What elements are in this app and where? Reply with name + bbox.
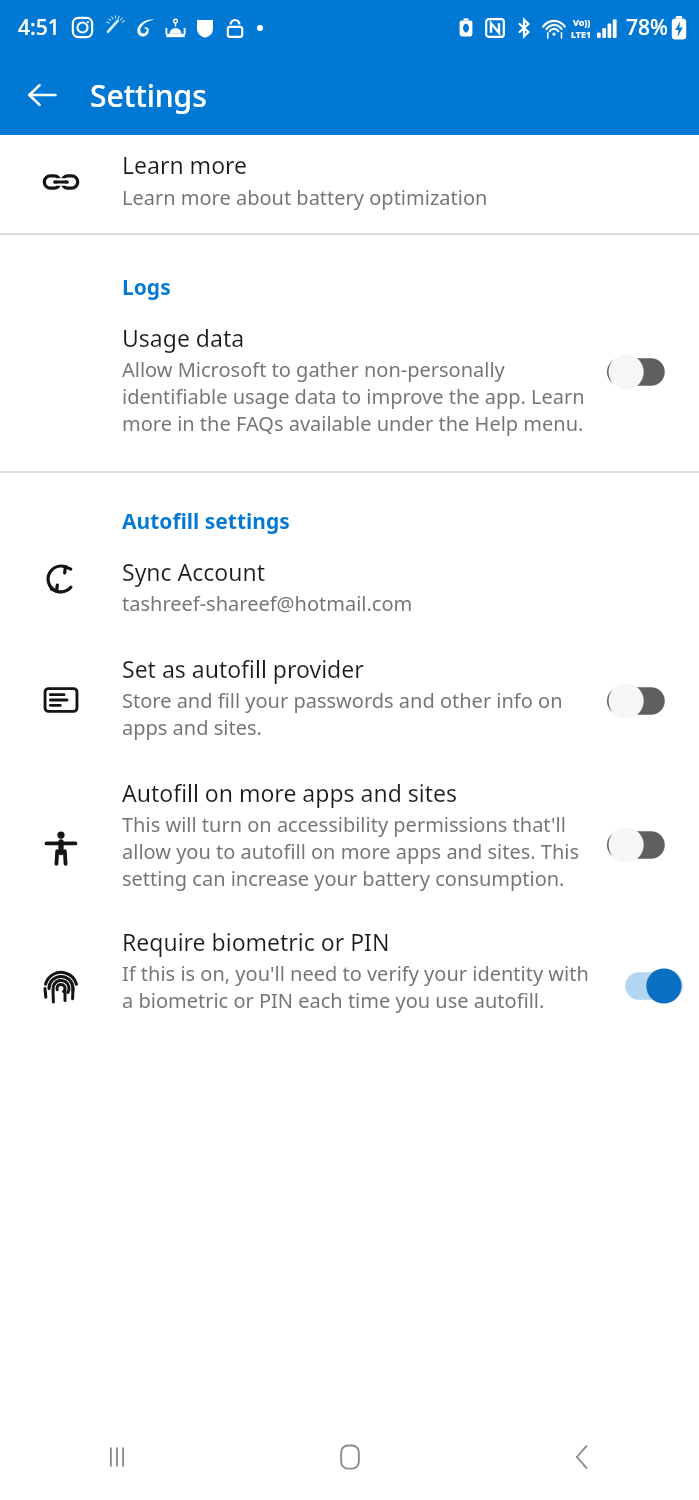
button[interactable]: Require biometric or PIN bbox=[0, 926, 699, 1044]
button[interactable]: Sync Account bbox=[0, 556, 699, 653]
button[interactable]: Toggle on bbox=[607, 964, 683, 1008]
staticText: Allow Microsoft to gather non-personally… bbox=[122, 356, 597, 437]
staticText: Store and fill your passwords and other … bbox=[122, 687, 599, 741]
button[interactable]: Toggle off bbox=[607, 350, 683, 394]
staticText: Autofill settings bbox=[122, 507, 290, 536]
button[interactable]: Recents bbox=[0, 1414, 233, 1500]
staticText: Learn more about battery optimization bbox=[122, 184, 488, 211]
staticText: Require biometric or PIN bbox=[122, 926, 390, 957]
staticText: Logs bbox=[122, 273, 171, 302]
staticText: Settings bbox=[90, 75, 207, 116]
button[interactable]: Toggle off bbox=[607, 823, 683, 867]
staticText: This will turn on accessibility permissi… bbox=[122, 811, 599, 892]
button[interactable]: Autofill on more apps and sites bbox=[0, 777, 699, 926]
staticText: Sync Account bbox=[122, 556, 266, 587]
button[interactable]: Learn more bbox=[0, 135, 699, 233]
staticText: Set as autofill provider bbox=[122, 653, 364, 684]
button[interactable]: Usage data bbox=[0, 322, 699, 471]
staticText: Autofill on more apps and sites bbox=[122, 777, 458, 808]
button[interactable]: Back bbox=[466, 1414, 699, 1500]
staticText: LTE1 bbox=[571, 28, 592, 40]
staticText: Vo)) bbox=[573, 16, 591, 28]
staticText: 4:51 bbox=[18, 13, 60, 42]
button[interactable]: Toggle off bbox=[607, 679, 683, 723]
staticText: Learn more bbox=[122, 149, 248, 180]
staticText: If this is on, you'll need to verify you… bbox=[122, 960, 599, 1014]
button[interactable]: Back bbox=[14, 67, 70, 123]
staticText: tashreef-shareef@hotmail.com bbox=[122, 590, 413, 617]
staticText: Usage data bbox=[122, 322, 245, 353]
button[interactable]: Set as autofill provider bbox=[0, 653, 699, 777]
staticText: 78% bbox=[626, 13, 668, 42]
button[interactable]: Home bbox=[233, 1414, 466, 1500]
